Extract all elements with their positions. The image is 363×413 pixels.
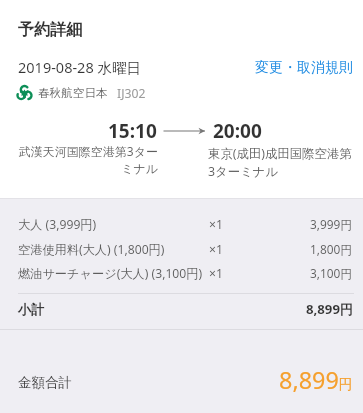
staticText: 大人 (3,999円): [18, 216, 97, 233]
staticText: 3,999円: [310, 216, 353, 232]
staticText: 小計: [18, 301, 45, 318]
staticText: 2019-08-28 水曜日: [18, 57, 141, 77]
staticText: 武漢天河国際空港第3ターミナル: [14, 143, 158, 176]
staticText: 春秋航空日本: [38, 86, 108, 101]
staticText: 3,100円: [310, 265, 353, 281]
staticText: 東京(成田)成田国際空港第3ターミナル: [208, 145, 356, 180]
staticText: ×1: [209, 241, 223, 258]
button[interactable]: 空港使用料(大人) (1,800円): [0, 237, 363, 261]
staticText: 燃油サーチャージ(大人) (3,100円): [18, 265, 203, 282]
staticText: ×1: [209, 265, 223, 282]
staticText: 予約詳細: [18, 19, 83, 39]
button[interactable]: 燃油サーチャージ(大人) (3,100円): [0, 261, 363, 285]
staticText: 変更・取消規則: [255, 59, 353, 77]
staticText: 金額合計: [18, 374, 72, 391]
staticText: IJ302: [117, 85, 146, 102]
staticText: 20:00: [213, 118, 262, 144]
button[interactable]: Spring Japan airline logo: [0, 78, 160, 109]
staticText: 8,899円: [306, 300, 354, 318]
button[interactable]: 大人 (3,999円): [0, 212, 363, 236]
staticText: 1,800円: [310, 241, 353, 257]
other: Spring Japan airline logo: [17, 86, 32, 101]
staticText: 15:10: [108, 118, 157, 144]
staticText: 8,899円: [279, 364, 353, 396]
staticText: ×1: [209, 216, 223, 233]
other: Flight direction: [157, 123, 213, 139]
staticText: 空港使用料(大人) (1,800円): [18, 241, 165, 258]
button[interactable]: 変更・取消規則: [243, 52, 363, 84]
